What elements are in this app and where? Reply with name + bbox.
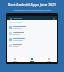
- staticText: a curated list of productivity picks: [0, 8, 64, 11]
- staticText: Best Android Apps June 2021: [0, 2, 64, 7]
- button[interactable]: [7, 30, 57, 36]
- button[interactable]: [7, 36, 57, 42]
- button[interactable]: Menu: [9, 17, 12, 20]
- button[interactable]: [7, 24, 57, 30]
- button[interactable]: Search: [52, 17, 55, 20]
- button[interactable]: Home: [7, 57, 23, 62]
- button[interactable]: [7, 42, 57, 48]
- button[interactable]: Profile: [40, 57, 57, 62]
- button[interactable]: Lists: [23, 57, 40, 62]
- button[interactable]: [7, 21, 57, 24]
